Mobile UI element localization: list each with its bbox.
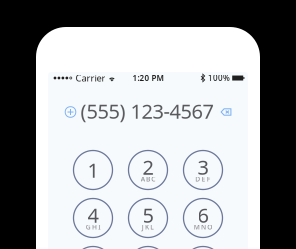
staticText: 2 [142,154,153,180]
staticText: 4 [87,202,98,228]
staticText: JKL [142,223,154,231]
button[interactable]: 5 [128,198,168,238]
button[interactable]: Add number [65,106,76,117]
button[interactable]: 6 [183,198,223,238]
staticText: ABC [141,175,155,183]
staticText: 6 [197,202,208,228]
staticText: GHI [86,223,100,231]
button[interactable]: 8 [128,246,168,249]
staticText: 3 [197,154,208,180]
button[interactable]: 2 [128,150,168,190]
staticText: MNO [194,223,212,231]
button[interactable]: 9 [183,246,223,249]
staticText: Carrier [75,72,105,84]
staticText: (555) 123-4567 [80,98,213,124]
staticText: 5 [142,202,153,228]
button[interactable]: Delete [220,108,231,116]
staticText: 100% [208,73,230,83]
button[interactable]: 4 [73,198,113,238]
button[interactable]: 7 [73,246,113,249]
button[interactable]: 3 [183,150,223,190]
staticText: 1 [87,157,98,183]
staticText: DEF [195,175,211,183]
button[interactable]: 1 [73,150,113,190]
staticText: 1:20 PM [132,73,163,83]
